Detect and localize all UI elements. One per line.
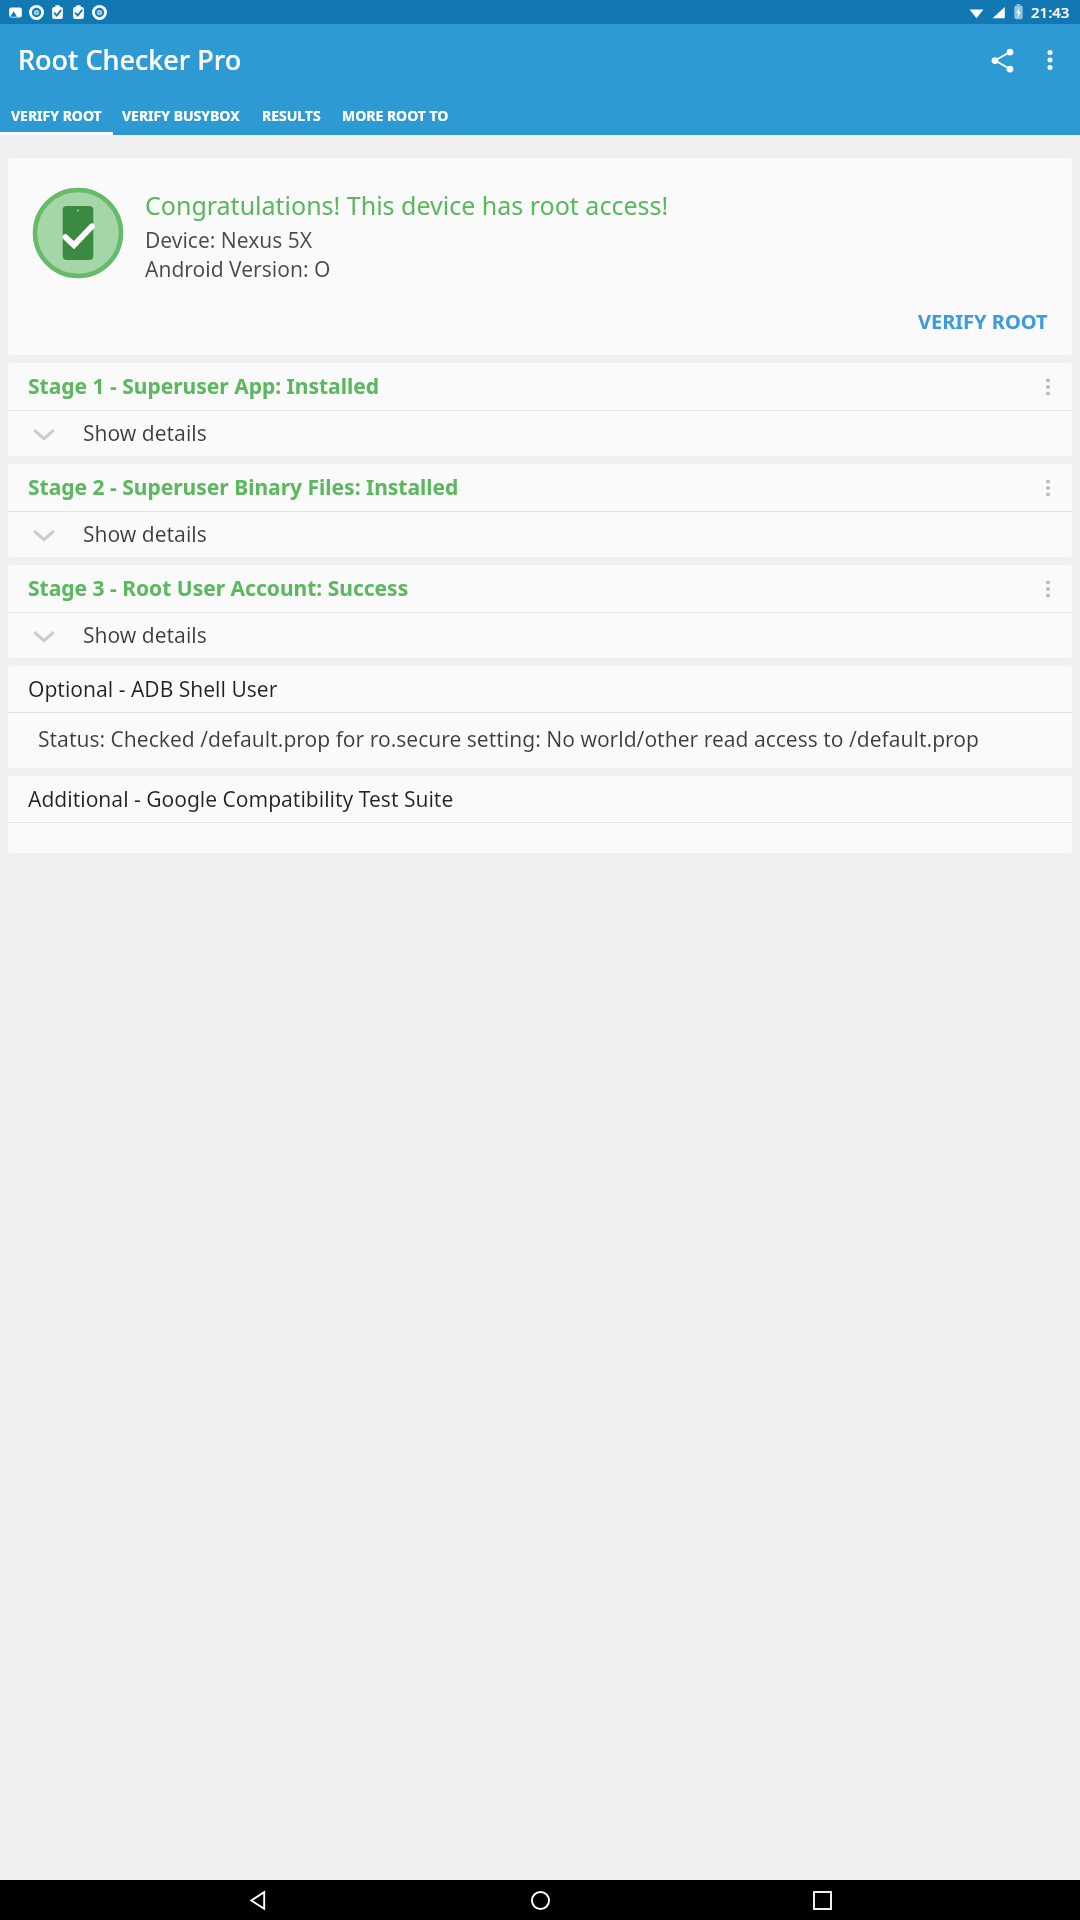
button[interactable]: Show details bbox=[8, 613, 1072, 658]
staticText: RESULTS bbox=[262, 106, 321, 125]
staticText: Status: Checked /default.prop for ro.sec… bbox=[38, 725, 979, 754]
staticText: VERIFY ROOT bbox=[918, 308, 1048, 335]
staticText: Root Checker Pro bbox=[18, 41, 242, 78]
button[interactable]: Stage options bbox=[1026, 567, 1070, 611]
button[interactable]: Recent apps bbox=[798, 1880, 846, 1920]
button[interactable]: Back bbox=[234, 1880, 282, 1920]
button[interactable]: Stage options bbox=[1026, 466, 1070, 510]
button[interactable]: Show details bbox=[8, 512, 1072, 557]
staticText: Android Version: O bbox=[145, 255, 331, 284]
staticText: VERIFY ROOT bbox=[11, 106, 102, 125]
staticText: Device: Nexus 5X bbox=[145, 226, 313, 255]
staticText: 21:43 bbox=[1031, 2, 1070, 22]
button[interactable]: VERIFY ROOT bbox=[0, 95, 113, 135]
staticText: MORE ROOT TO bbox=[342, 106, 449, 125]
button[interactable]: Show details bbox=[8, 411, 1072, 456]
staticText: VERIFY BUSYBOX bbox=[122, 106, 240, 125]
button[interactable]: VERIFY BUSYBOX bbox=[113, 95, 248, 135]
button[interactable]: Stage options bbox=[1026, 365, 1070, 409]
button[interactable]: VERIFY ROOT bbox=[908, 298, 1058, 345]
staticText: Stage 2 - Superuser Binary Files: Instal… bbox=[28, 473, 1026, 502]
staticText: Congratulations! This device has root ac… bbox=[145, 188, 669, 222]
staticText: Show details bbox=[83, 520, 207, 549]
button[interactable]: More options bbox=[1026, 36, 1074, 84]
button[interactable]: Share bbox=[978, 36, 1026, 84]
button[interactable]: MORE ROOT TO bbox=[335, 95, 455, 135]
button[interactable]: Optional - ADB Shell User bbox=[8, 666, 1072, 768]
button[interactable]: Additional - Google Compatibility Test S… bbox=[8, 776, 1072, 853]
staticText: Show details bbox=[83, 419, 207, 448]
button[interactable]: Home bbox=[516, 1880, 564, 1920]
staticText: Optional - ADB Shell User bbox=[28, 675, 278, 704]
staticText: Additional - Google Compatibility Test S… bbox=[28, 785, 454, 814]
button[interactable]: RESULTS bbox=[248, 95, 335, 135]
staticText: Stage 1 - Superuser App: Installed bbox=[28, 372, 1026, 401]
staticText: Show details bbox=[83, 621, 207, 650]
staticText: Stage 3 - Root User Account: Success bbox=[28, 574, 1026, 603]
